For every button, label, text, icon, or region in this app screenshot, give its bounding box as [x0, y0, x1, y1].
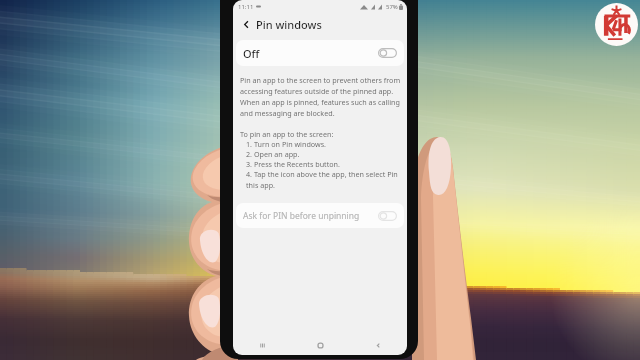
- staticText: Off: [243, 46, 260, 61]
- staticText: 2. Open an app.: [246, 149, 300, 159]
- staticText: Pin windows: [256, 17, 322, 32]
- staticText: 1. Turn on Pin windows.: [246, 139, 327, 149]
- button[interactable]: Back: [349, 335, 407, 355]
- button[interactable]: Home: [291, 335, 349, 355]
- button[interactable]: Recents: [233, 335, 291, 355]
- staticText: 11:11: [238, 3, 254, 11]
- staticText: Ask for PIN before unpinning: [243, 210, 360, 222]
- staticText: 4. Tap the icon above the app, then sele…: [246, 169, 402, 190]
- staticText: Pin an app to the screen to prevent othe…: [240, 75, 402, 118]
- button[interactable]: Back: [238, 16, 254, 32]
- button[interactable]: Ask for PIN before unpinning: [236, 203, 404, 228]
- staticText: 3. Press the Recents button.: [246, 159, 340, 169]
- staticText: To pin an app to the screen:: [240, 129, 334, 139]
- staticText: 57%: [386, 3, 398, 11]
- button[interactable]: Off: [236, 40, 404, 66]
